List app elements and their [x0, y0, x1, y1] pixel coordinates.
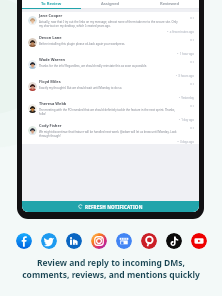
button[interactable]: More options — [190, 17, 194, 19]
button[interactable]: TikTok — [166, 233, 182, 249]
button[interactable]: Cody Fisher — [22, 122, 199, 144]
staticText: Floyd Miles — [39, 79, 61, 84]
staticText: Actually, now that I try out the links o… — [39, 20, 178, 24]
button[interactable]: YouTube — [191, 233, 207, 249]
staticText: To Review — [41, 1, 62, 7]
staticText: my shortcut on my desktop, which I creat… — [39, 24, 111, 28]
button[interactable]: Devon Lane — [22, 34, 199, 56]
staticText: comments, reviews, and mentions quickly — [22, 269, 200, 281]
staticText: • a few minutes ago — [167, 30, 194, 34]
button[interactable]: Wade Warren — [22, 56, 199, 78]
button[interactable]: More options — [190, 61, 194, 63]
staticText: Devon Lane — [39, 35, 62, 40]
staticText: • 1 day ago — [178, 118, 194, 122]
staticText: • 1 hour ago — [177, 52, 194, 56]
staticText: The meeting with the PO revealed that we… — [39, 108, 176, 112]
staticText: Assigned — [101, 1, 120, 7]
staticText: Jane Cooper — [39, 13, 63, 18]
button[interactable]: More options — [190, 39, 194, 41]
button[interactable]: More options — [190, 105, 194, 107]
other: Refresh — [78, 204, 83, 209]
button[interactable]: Refresh — [22, 201, 199, 212]
staticText: Reviewed — [160, 1, 180, 7]
staticText: Theresa Webb — [39, 101, 67, 106]
staticText: Wade Warren — [39, 57, 66, 62]
staticText: Cody Fisher — [39, 123, 62, 128]
button[interactable]: Reviewed — [140, 1, 199, 9]
staticText: REFRESH NOTIFICATION — [85, 204, 143, 210]
staticText: Before installing this plugin please cd-… — [39, 42, 126, 46]
staticText: • Yesterday — [178, 96, 194, 100]
staticText: Thanks for the info! Regardless, we shou… — [39, 64, 148, 68]
button[interactable]: More options — [190, 83, 194, 85]
staticText: • 3 hours ago — [175, 74, 194, 78]
staticText: Review and reply to incoming DMs, — [37, 257, 185, 269]
button[interactable]: More options — [190, 127, 194, 129]
button[interactable]: Pinterest — [141, 233, 157, 249]
button[interactable]: Floyd Miles — [22, 78, 199, 100]
staticText: • 3 days ago — [177, 140, 194, 144]
staticText: We might discontinue that feature will b… — [39, 130, 177, 134]
button[interactable]: Google Business — [116, 233, 132, 249]
button[interactable]: Theresa Webb — [22, 100, 199, 122]
button[interactable]: Jane Cooper — [22, 12, 199, 34]
staticText: Exactly my thoughts! But we should wait … — [39, 86, 123, 90]
staticText: folks! — [39, 112, 46, 116]
button[interactable]: Assigned — [81, 1, 140, 9]
button[interactable]: To Review — [22, 1, 81, 9]
button[interactable]: Twitter — [41, 233, 57, 249]
staticText: through though! — [39, 134, 61, 138]
button[interactable]: Instagram — [91, 233, 107, 249]
button[interactable]: Facebook — [16, 233, 32, 249]
button[interactable]: LinkedIn — [66, 233, 82, 249]
